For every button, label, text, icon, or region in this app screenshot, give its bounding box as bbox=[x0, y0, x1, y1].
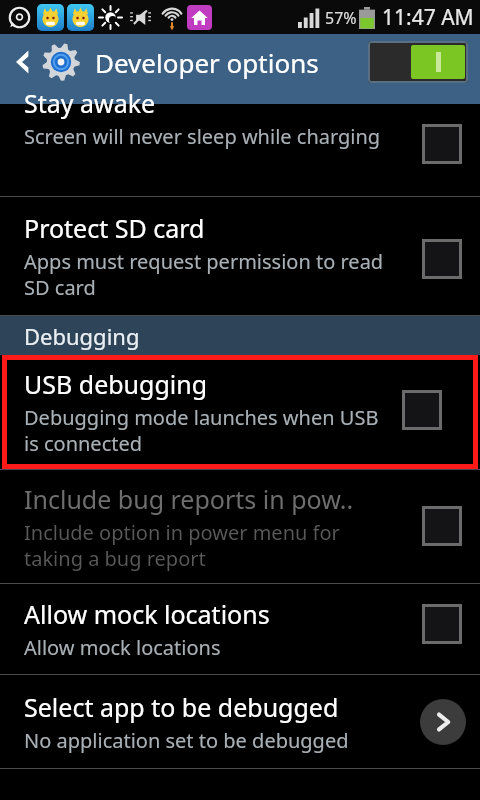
staticText: Allow mock locations bbox=[24, 634, 221, 661]
staticText: Include option in power menu for taking … bbox=[24, 519, 392, 572]
button[interactable]: Protect SD card bbox=[0, 197, 480, 315]
staticText: Allow mock locations bbox=[24, 597, 270, 631]
staticText: Select app to be debugged bbox=[24, 690, 339, 724]
staticText: Include bug reports in pow.. bbox=[24, 482, 354, 516]
staticText: Stay awake bbox=[24, 86, 156, 120]
staticText: USB debugging bbox=[24, 367, 208, 401]
button[interactable]: Checkbox bbox=[422, 604, 462, 644]
button[interactable]: Checkbox bbox=[422, 239, 462, 279]
staticText: Screen will never sleep while charging bbox=[24, 123, 381, 150]
button[interactable]: Open bbox=[420, 699, 466, 745]
button[interactable]: USB debugging bbox=[2, 355, 478, 469]
button[interactable]: Toggle developer options bbox=[368, 41, 468, 83]
button[interactable]: Stay awake bbox=[0, 104, 480, 196]
staticText: Apps must request permission to read SD … bbox=[24, 248, 392, 301]
button[interactable]: Allow mock locations bbox=[0, 584, 480, 674]
staticText: No application set to be debugged bbox=[24, 727, 349, 754]
button[interactable]: Select app to be debugged bbox=[0, 675, 480, 768]
staticText: 11:47 AM bbox=[382, 3, 474, 32]
staticText: Developer options bbox=[95, 45, 319, 80]
button[interactable]: Checkbox bbox=[422, 124, 462, 164]
staticText: Debugging mode launches when USB is conn… bbox=[24, 404, 390, 457]
button[interactable]: Checkbox bbox=[402, 390, 442, 430]
button[interactable]: Checkbox bbox=[422, 506, 462, 546]
staticText: 57% bbox=[325, 7, 357, 29]
staticText: Debugging bbox=[24, 321, 140, 351]
staticText: Protect SD card bbox=[24, 211, 205, 245]
button[interactable]: Back bbox=[0, 34, 85, 90]
